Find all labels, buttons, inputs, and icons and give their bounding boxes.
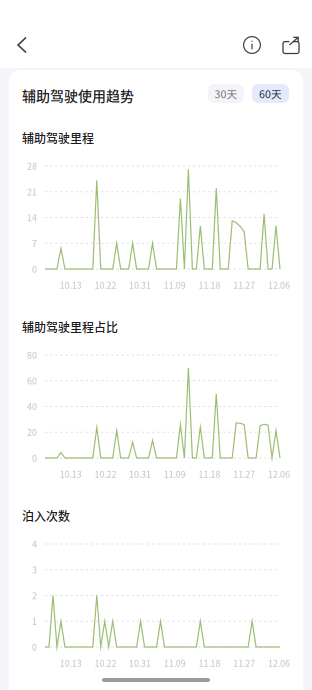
staticText: 10.22 (94, 657, 116, 669)
button[interactable]: Info (234, 22, 270, 68)
button[interactable]: 60天 (252, 84, 289, 103)
staticText: 10.22 (94, 279, 116, 291)
button[interactable]: Share (270, 22, 312, 68)
staticText: 11.27 (233, 468, 255, 480)
staticText: 12.06 (268, 468, 290, 480)
staticText: 40 (27, 400, 37, 413)
staticText: 11.09 (164, 468, 186, 480)
staticText: 0 (32, 263, 37, 275)
staticText: 11.18 (198, 468, 220, 480)
staticText: 11.27 (233, 657, 255, 669)
staticText: 28 (27, 160, 37, 172)
staticText: 12.06 (268, 279, 290, 291)
staticText: 10.13 (60, 468, 82, 480)
staticText: 0 (32, 641, 37, 653)
staticText: 10.31 (129, 279, 151, 291)
staticText: 3 (32, 563, 37, 576)
staticText: 11.18 (198, 279, 220, 291)
staticText: 1 (32, 615, 37, 627)
staticText: 10.31 (129, 657, 151, 669)
staticText: 2 (32, 589, 37, 602)
staticText: 0 (32, 452, 37, 464)
staticText: 泊入次数 (22, 507, 70, 524)
staticText: 辅助驾驶里程占比 (22, 318, 118, 335)
staticText: 11.18 (198, 657, 220, 669)
staticText: 11.27 (233, 279, 255, 291)
staticText: 30天 (214, 86, 237, 101)
staticText: 80 (27, 349, 37, 361)
staticText: 11.09 (164, 279, 186, 291)
staticText: 辅助驾驶里程 (22, 129, 94, 146)
staticText: 12.06 (268, 657, 290, 669)
staticText: 11.09 (164, 657, 186, 669)
staticText: 10.13 (60, 279, 82, 291)
staticText: 60天 (259, 86, 282, 101)
staticText: 21 (27, 185, 37, 198)
staticText: 10.22 (94, 468, 116, 480)
staticText: 4 (32, 538, 37, 550)
staticText: 20 (27, 426, 37, 438)
staticText: 10.31 (129, 468, 151, 480)
staticText: 10.13 (60, 657, 82, 669)
staticText: 辅助驾驶使用趋势 (22, 85, 134, 105)
button[interactable]: 30天 (208, 84, 244, 103)
staticText: 14 (27, 211, 37, 224)
staticText: 60 (27, 374, 37, 387)
staticText: 7 (32, 237, 37, 249)
button[interactable]: Back (0, 22, 44, 68)
